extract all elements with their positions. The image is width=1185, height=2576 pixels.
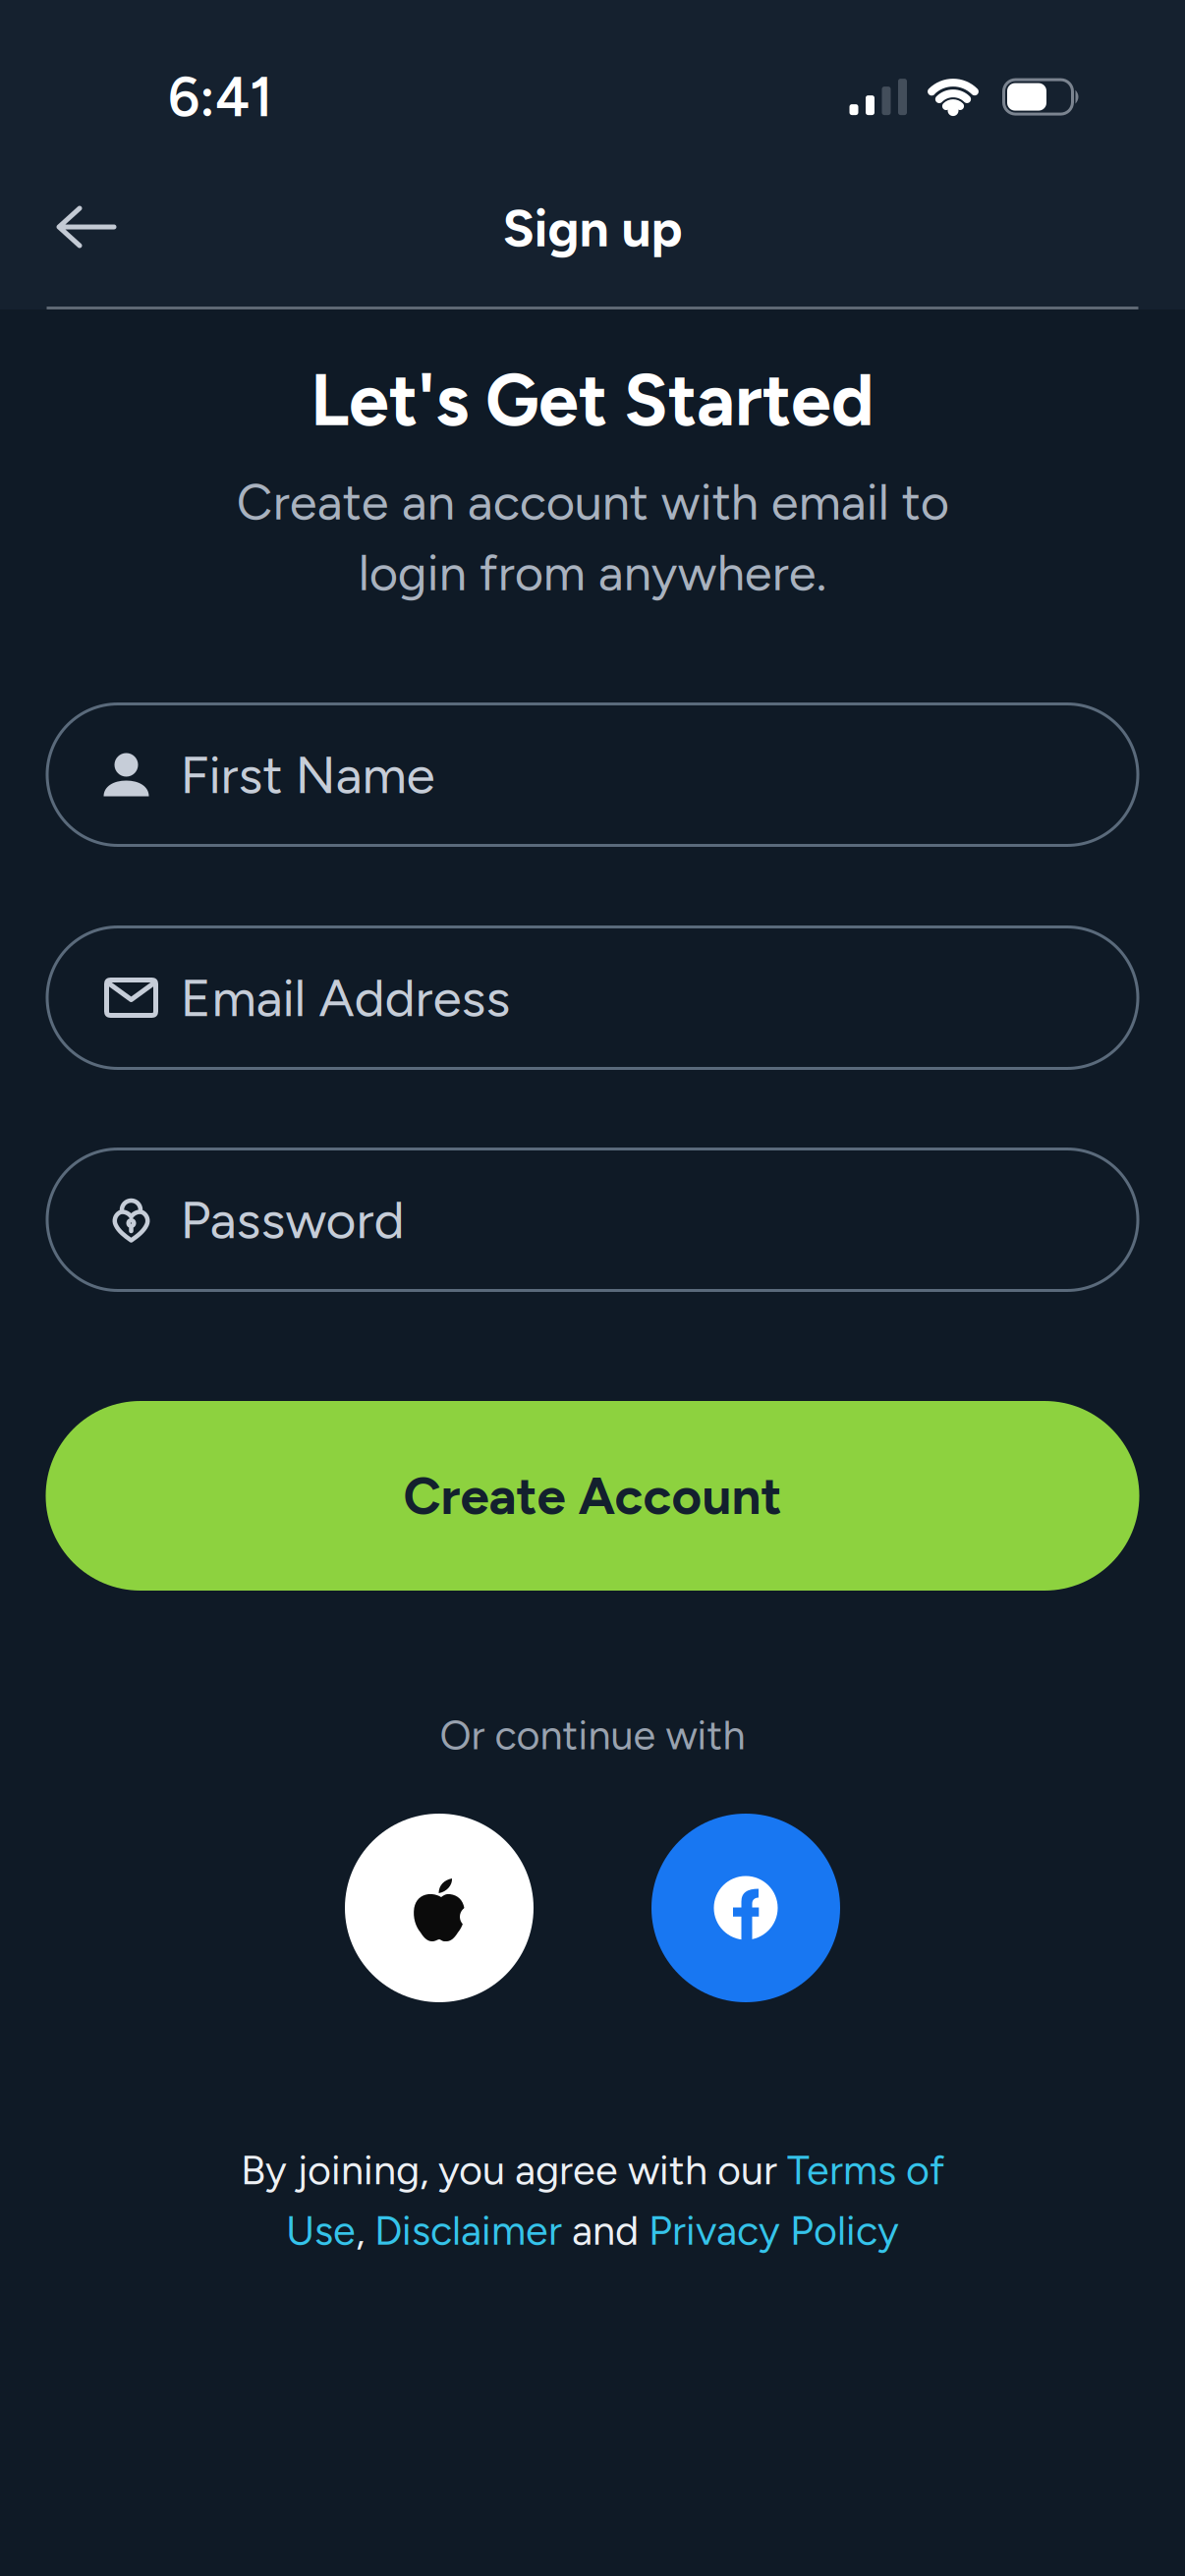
button[interactable]: Terms of <box>787 2146 944 2194</box>
staticText: Create an account with email to login fr… <box>236 472 949 603</box>
button[interactable]: Email Address <box>46 925 1139 1070</box>
staticText: First Name <box>180 743 435 806</box>
staticText: Or continue with <box>440 1711 745 1759</box>
staticText: Let's Get Started <box>310 357 875 443</box>
staticText: Password <box>180 1188 404 1251</box>
staticText: Sign up <box>503 196 682 259</box>
staticText: Terms of <box>787 2146 944 2194</box>
button[interactable]: Back <box>0 0 117 247</box>
button[interactable]: Use <box>286 2206 356 2255</box>
button[interactable]: Continue with Apple <box>345 1814 534 2002</box>
staticText: Create Account <box>403 1465 782 1527</box>
button[interactable]: Privacy Policy <box>649 2206 899 2255</box>
staticText: Use <box>286 2206 356 2255</box>
button[interactable]: Password <box>46 1148 1139 1292</box>
staticText: Disclaimer <box>374 2206 562 2255</box>
staticText: 6:41 <box>168 64 272 130</box>
staticText: Email Address <box>180 966 510 1029</box>
button[interactable]: Disclaimer <box>374 2206 562 2255</box>
staticText: By joining, you agree with our <box>241 2146 787 2194</box>
staticText: Privacy Policy <box>649 2206 899 2255</box>
button[interactable]: Create Account <box>46 1401 1139 1591</box>
staticText: , <box>356 2206 374 2255</box>
button[interactable]: Continue with Facebook <box>651 1814 840 2002</box>
staticText: and <box>562 2206 649 2255</box>
button[interactable]: First Name <box>46 702 1139 847</box>
